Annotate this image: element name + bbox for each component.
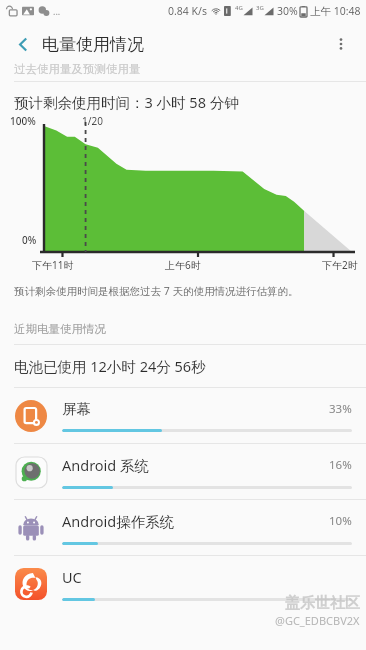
staticText: 下午2时 [322, 258, 358, 272]
button[interactable]: 电池已使用 12小时 24分 56秒 [0, 345, 366, 387]
staticText: 3G [256, 4, 264, 12]
staticText: 4G [235, 4, 243, 12]
staticText: 盖乐世社区 [285, 594, 360, 613]
staticText: 1/20 [82, 114, 103, 128]
staticText: Android 系统 [62, 455, 329, 475]
button[interactable]: 屏幕 [0, 388, 366, 443]
staticText: 上午6时 [165, 258, 201, 272]
staticText: 屏幕 [62, 400, 329, 418]
button[interactable]: Back [4, 25, 42, 63]
staticText: Android操作系统 [62, 511, 329, 531]
staticText: UC [62, 567, 352, 587]
staticText: ... [53, 5, 61, 17]
staticText: 0.84 K/s [168, 4, 207, 18]
staticText: 10% [329, 513, 352, 529]
staticText: 下午11时 [32, 258, 74, 272]
staticText: 电量使用情况 [42, 34, 144, 55]
button[interactable]: Android 系统 [0, 444, 366, 499]
staticText: @GC_EDBCBV2X [275, 613, 360, 628]
staticText: 0% [22, 233, 37, 247]
staticText: 16% [329, 457, 352, 473]
button[interactable]: Android操作系统 [0, 500, 366, 555]
staticText: 预计剩余使用时间是根据您过去 7 天的使用情况进行估算的。 [14, 284, 299, 298]
button[interactable]: UC [0, 556, 366, 611]
staticText: 33% [329, 401, 352, 417]
staticText: 过去使用量及预测使用量 [14, 62, 141, 76]
button[interactable]: More options [322, 25, 360, 63]
staticText: 近期电量使用情况 [14, 322, 106, 336]
staticText: 30% [277, 4, 298, 18]
staticText: 预计剩余使用时间：3 小时 58 分钟 [14, 92, 239, 112]
staticText: 上午 10:48 [310, 4, 361, 18]
staticText: 100% [10, 114, 36, 128]
staticText: 电池已使用 12小时 24分 56秒 [14, 356, 206, 376]
